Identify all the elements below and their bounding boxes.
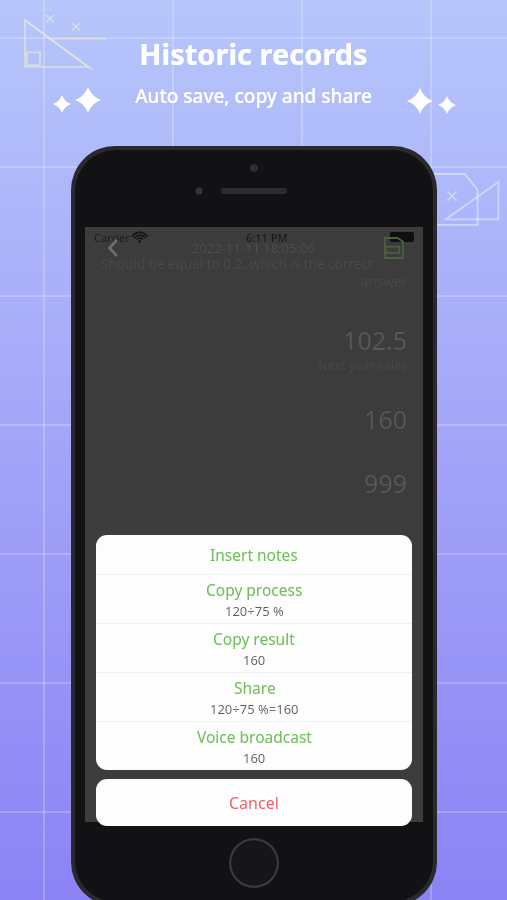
staticText: 120÷75 % (225, 602, 284, 620)
staticText: Copy process (206, 579, 303, 600)
staticText: 160 (243, 651, 266, 669)
staticText: Voice broadcast (197, 726, 312, 747)
staticText: Should be equal to 0.2, which is the cor… (101, 255, 373, 273)
staticText: 160 (243, 749, 266, 767)
staticText: Copy result (213, 628, 295, 649)
staticText: 120÷75 %=160 (210, 700, 299, 718)
button[interactable]: Share (96, 673, 412, 721)
button[interactable]: Back (97, 231, 131, 265)
staticText: 160 (101, 402, 407, 436)
staticText: Cancel (229, 792, 279, 814)
button[interactable]: Cancel (96, 779, 412, 826)
button[interactable]: Home (229, 838, 279, 888)
button[interactable]: Insert notes (96, 535, 412, 574)
staticText: Historic records (139, 34, 368, 73)
staticText: Share (234, 677, 276, 698)
staticText: 102.5 (101, 323, 407, 357)
staticText: Insert notes (210, 544, 298, 565)
staticText: 6:11 PM (246, 230, 288, 245)
staticText: 2022-11-11 18:05:06 (192, 239, 315, 257)
button[interactable]: Copy result (96, 624, 412, 672)
staticText: Auto save, copy and share (135, 83, 372, 109)
button[interactable]: Voice broadcast (96, 722, 412, 770)
button[interactable]: Export (377, 231, 411, 265)
staticText: 999 (101, 466, 407, 500)
button[interactable]: Copy process (96, 575, 412, 623)
staticText: Carrier (94, 230, 130, 245)
